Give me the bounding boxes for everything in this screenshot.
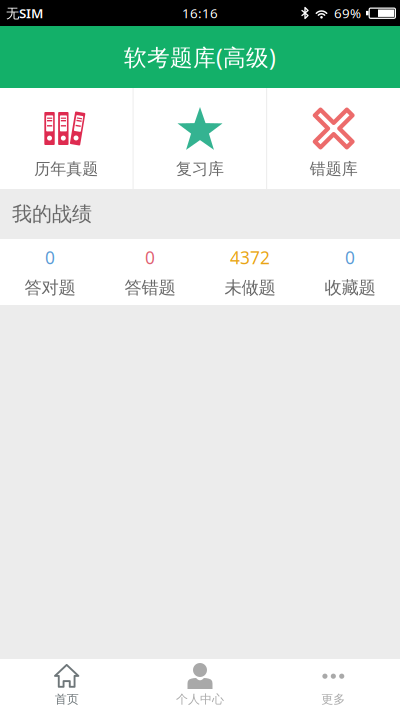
- staticText: 答错题: [124, 277, 175, 298]
- staticText: 69%: [334, 4, 361, 22]
- button[interactable]: 首页: [0, 659, 133, 711]
- staticText: 答对题: [24, 277, 75, 298]
- button[interactable]: 复习库: [134, 88, 266, 189]
- staticText: 历年真题: [34, 159, 98, 179]
- staticText: 4372: [230, 246, 270, 269]
- button[interactable]: 个人中心: [133, 659, 267, 711]
- staticText: 未做题: [224, 277, 275, 298]
- staticText: 16:16: [182, 4, 218, 22]
- button[interactable]: 历年真题: [0, 88, 133, 189]
- staticText: 收藏题: [324, 277, 375, 298]
- staticText: 首页: [55, 692, 79, 707]
- staticText: 复习库: [176, 159, 224, 179]
- staticText: 软考题库(高级): [124, 42, 276, 72]
- button[interactable]: 更多: [267, 659, 400, 711]
- staticText: 错题库: [310, 159, 358, 179]
- staticText: 0: [45, 246, 55, 269]
- staticText: 更多: [321, 692, 345, 707]
- staticText: 0: [345, 246, 355, 269]
- staticText: 个人中心: [176, 692, 224, 707]
- staticText: 我的战绩: [12, 202, 92, 226]
- staticText: 0: [145, 246, 155, 269]
- staticText: 无SIM: [6, 4, 43, 22]
- button[interactable]: 错题库: [267, 88, 400, 189]
